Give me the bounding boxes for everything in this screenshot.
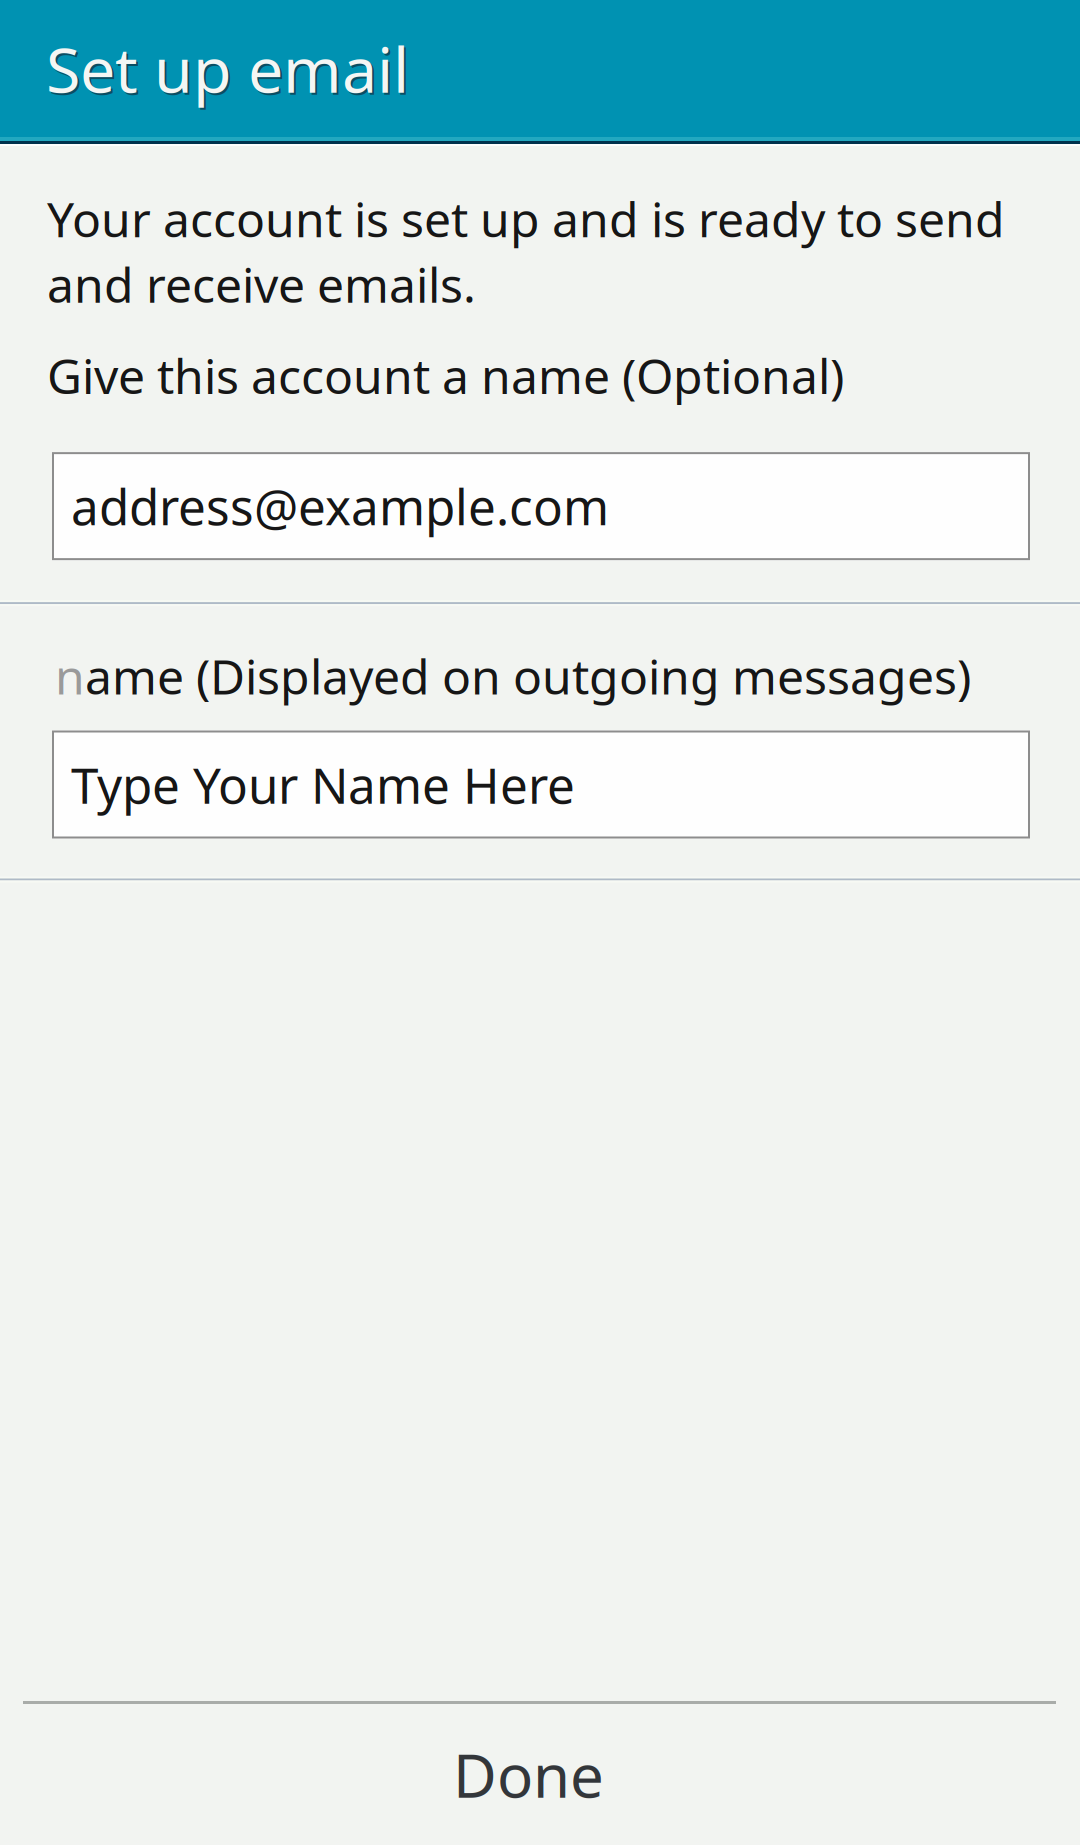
staticText: address@example.com	[71, 472, 609, 540]
staticText: Done	[453, 1734, 604, 1815]
button[interactable]: Done	[0, 1704, 1080, 1845]
button[interactable]: Account name	[52, 452, 1030, 560]
staticText: Type Your Name Here	[71, 751, 575, 818]
staticText: Your account is set up and is ready to s…	[47, 186, 1005, 317]
staticText: Set up email	[46, 26, 409, 111]
staticText: ame (Displayed on outgoing messages)	[85, 643, 971, 708]
staticText: Give this account a name (Optional)	[47, 343, 844, 408]
button[interactable]: Your name	[52, 730, 1030, 838]
